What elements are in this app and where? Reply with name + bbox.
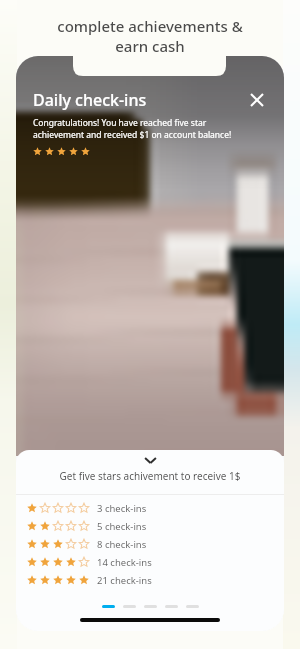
staticText: complete achievements & earn cash (0, 16, 300, 56)
button[interactable]: 8 check-ins (16, 535, 284, 553)
staticText: 14 check-ins (97, 556, 152, 569)
staticText: Get five stars achivement to receive 1$ (16, 469, 284, 483)
staticText: 3 check-ins (97, 502, 147, 515)
button[interactable]: Close (243, 86, 271, 114)
button[interactable]: 21 check-ins (16, 571, 284, 589)
staticText: 21 check-ins (97, 574, 152, 587)
button[interactable]: 3 check-ins (16, 499, 284, 517)
staticText: Daily check-ins (33, 89, 147, 111)
button[interactable]: Collapse (16, 454, 284, 466)
button[interactable]: 5 check-ins (16, 517, 284, 535)
staticText: 5 check-ins (97, 520, 147, 533)
staticText: Congratulations! You have reached five s… (33, 117, 232, 141)
button[interactable]: 14 check-ins (16, 553, 284, 571)
staticText: 8 check-ins (97, 538, 147, 551)
